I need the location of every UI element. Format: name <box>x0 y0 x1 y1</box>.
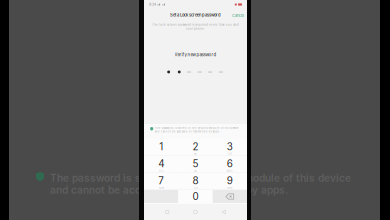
staticText: WXYZ <box>227 187 232 189</box>
staticText: ABC <box>193 153 197 155</box>
button[interactable]: 8 <box>178 173 213 190</box>
staticText: 7 <box>158 175 164 186</box>
button[interactable]: Recents <box>163 207 172 217</box>
staticText: 3 <box>227 141 233 152</box>
staticText: Cancel <box>232 13 244 18</box>
button[interactable]: 0 <box>178 190 213 203</box>
staticText: and cannot be accessed or transferred by… <box>50 184 288 196</box>
staticText: 0 <box>192 190 198 202</box>
staticText: TUV <box>193 187 197 189</box>
staticText: 6 <box>227 158 233 169</box>
button[interactable]: 7 <box>144 173 178 190</box>
staticText: GHI <box>159 170 164 172</box>
button[interactable]: 9 <box>213 173 247 190</box>
staticText: 8:34 <box>149 2 156 7</box>
staticText: JKL <box>194 170 197 172</box>
button[interactable]: 4 <box>144 156 178 173</box>
staticText: 8 <box>192 175 198 186</box>
staticText: Verify new password <box>174 52 216 57</box>
button[interactable]: Delete <box>213 190 247 203</box>
button[interactable]: Home <box>190 207 200 217</box>
button[interactable]: Back <box>219 207 228 217</box>
staticText: Set a Lock screen password <box>170 13 221 18</box>
staticText: 9 <box>227 175 233 186</box>
staticText: 1 <box>159 141 163 152</box>
staticText: MNO <box>227 170 233 172</box>
staticText: and cannot be accessed or transferred by… <box>155 130 220 133</box>
staticText: The lock screen password is required eve… <box>152 23 239 26</box>
staticText: 4 <box>158 158 164 169</box>
staticText: 2 <box>192 141 198 152</box>
staticText: your phone. <box>186 27 205 30</box>
button[interactable]: Cancel <box>230 12 246 19</box>
staticText: The password is stored in the security m… <box>155 126 239 130</box>
button[interactable]: 3 <box>213 139 247 156</box>
staticText: PQRS <box>159 187 164 189</box>
button[interactable]: 5 <box>178 156 213 173</box>
button[interactable]: 6 <box>213 156 247 173</box>
staticText: The password is stored in the security m… <box>50 172 351 184</box>
staticText: DEF <box>228 153 232 155</box>
button[interactable]: 1 <box>144 139 178 156</box>
button[interactable]: 2 <box>178 139 213 156</box>
staticText: 5 <box>192 158 198 169</box>
